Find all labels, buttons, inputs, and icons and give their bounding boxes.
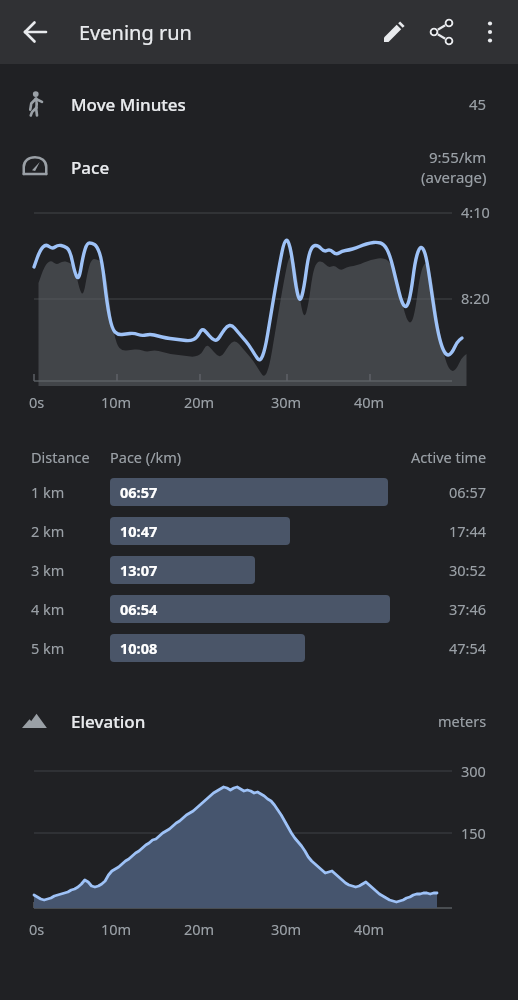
staticText: 300 [461,761,486,781]
staticText: 9:55/km [429,147,487,167]
staticText: 40m [354,919,385,939]
button[interactable]: 1 km [0,472,518,511]
staticText: 45 [469,94,487,114]
staticText: 06:57 [120,482,158,502]
staticText: 8:20 [461,288,490,308]
staticText: 47:54 [449,638,487,658]
staticText: 37:46 [449,599,487,619]
staticText: Elevation [71,710,146,733]
button[interactable]: Edit [370,8,418,56]
staticText: 0s [29,392,45,412]
staticText: 20m [184,392,215,412]
button[interactable]: 5 km [0,628,518,667]
staticText: 13:07 [120,560,158,580]
staticText: 3 km [31,560,65,580]
staticText: 10:08 [120,638,158,658]
staticText: 17:44 [449,521,487,541]
staticText: (average) [421,167,487,187]
staticText: 10m [101,392,132,412]
staticText: Evening run [79,19,192,46]
staticText: 30m [271,919,302,939]
button[interactable]: Move Minutes [0,74,518,134]
staticText: 10m [101,919,132,939]
staticText: 06:57 [449,482,487,502]
button[interactable]: Share [418,8,466,56]
staticText: 30:52 [449,560,487,580]
staticText: 2 km [31,521,65,541]
staticText: Active time [411,447,487,467]
staticText: 10:47 [120,521,158,541]
staticText: 30m [271,392,302,412]
button[interactable]: 4 km [0,589,518,628]
staticText: 06:54 [120,599,158,619]
staticText: Move Minutes [71,93,186,116]
staticText: Pace (/km) [110,447,182,467]
button[interactable]: Back [12,8,60,56]
button[interactable]: More options [466,8,514,56]
staticText: 4 km [31,599,65,619]
staticText: Pace [71,156,110,179]
staticText: 4:10 [461,202,490,222]
button[interactable]: 3 km [0,550,518,589]
staticText: meters [438,711,487,731]
button[interactable]: Pace [0,134,518,200]
staticText: 5 km [31,638,65,658]
staticText: 150 [461,823,486,843]
staticText: 1 km [31,482,65,502]
staticText: Distance [31,447,90,467]
staticText: 40m [354,392,385,412]
button[interactable]: 2 km [0,511,518,550]
staticText: 0s [29,919,45,939]
staticText: 20m [184,919,215,939]
